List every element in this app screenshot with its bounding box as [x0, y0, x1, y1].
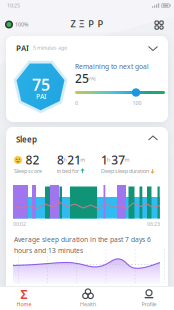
staticText: PAI	[36, 92, 46, 101]
staticText: 37	[111, 152, 125, 168]
button[interactable]: PAI	[6, 36, 168, 122]
staticText: Health	[80, 301, 96, 308]
staticText: m	[124, 156, 129, 163]
button[interactable]: Manage devices	[0, 0, 8, 8]
staticText: 10:25	[7, 2, 20, 9]
staticText: Sleep score	[14, 167, 42, 175]
staticText: Profile	[141, 301, 156, 308]
staticText: 00:02	[13, 220, 26, 228]
staticText: m	[80, 156, 85, 163]
staticText: 5 minutes ago	[33, 44, 67, 51]
staticText: 06:23	[147, 220, 160, 228]
staticText: Remaining to next goal	[75, 62, 149, 71]
button[interactable]: Sleep	[6, 127, 168, 310]
staticText: h	[64, 156, 67, 163]
staticText: in bed for	[57, 167, 79, 175]
staticText: Sleep	[16, 134, 37, 145]
staticText: Deep sleep duration	[101, 167, 149, 175]
staticText: 21	[67, 152, 81, 168]
staticText: 25	[75, 70, 89, 86]
staticText: Z	[70, 17, 75, 30]
staticText: PAI	[88, 75, 96, 82]
staticText: 0	[75, 99, 78, 107]
staticText: 100	[132, 99, 141, 107]
staticText: PAI	[16, 43, 29, 54]
staticText: 75	[32, 74, 50, 95]
button[interactable]: Health	[64, 287, 112, 310]
staticText: hours and 13 minutes	[14, 246, 83, 255]
staticText: Σ	[20, 286, 27, 302]
button[interactable]: Σ	[0, 287, 48, 310]
staticText: h	[107, 156, 110, 163]
staticText: 8	[57, 152, 64, 168]
staticText: P	[98, 17, 104, 30]
staticText: 82	[25, 152, 39, 168]
staticText: 100%	[15, 21, 28, 28]
staticText: Ξ	[79, 17, 85, 30]
button[interactable]: Profile	[125, 287, 173, 310]
staticText: P	[88, 17, 94, 30]
staticText: Average sleep duration in the past 7 day…	[14, 235, 151, 244]
staticText: 1	[101, 152, 108, 168]
staticText: Home	[16, 301, 31, 308]
button[interactable]: Watch battery 100%	[0, 0, 23, 8]
